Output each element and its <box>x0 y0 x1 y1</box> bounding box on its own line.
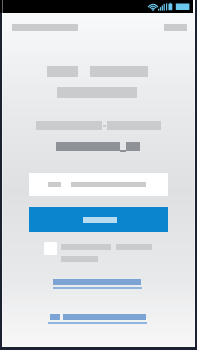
button[interactable]: Create account link <box>63 314 146 324</box>
button[interactable]: Forgot password link <box>53 279 142 290</box>
button[interactable]: Help link <box>50 314 60 324</box>
button[interactable]: Email input field <box>29 173 168 196</box>
button[interactable]: Sign in button <box>29 207 168 232</box>
